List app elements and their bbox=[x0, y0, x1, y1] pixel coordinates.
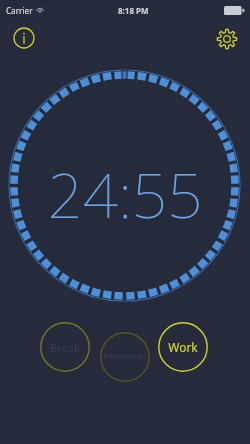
staticText: Break bbox=[50, 340, 80, 355]
button[interactable]: Procrastinate bbox=[100, 332, 150, 382]
button[interactable]: Settings bbox=[212, 24, 242, 54]
staticText: 8:18 PM bbox=[118, 5, 149, 16]
button[interactable]: Info bbox=[10, 24, 38, 52]
staticText: Work bbox=[168, 339, 198, 355]
staticText: Procrastinate bbox=[103, 352, 147, 362]
staticText: Carrier bbox=[6, 5, 33, 16]
staticText: 24:55 bbox=[0, 152, 250, 236]
button[interactable]: Work bbox=[158, 322, 208, 372]
button[interactable]: Break bbox=[40, 322, 90, 372]
